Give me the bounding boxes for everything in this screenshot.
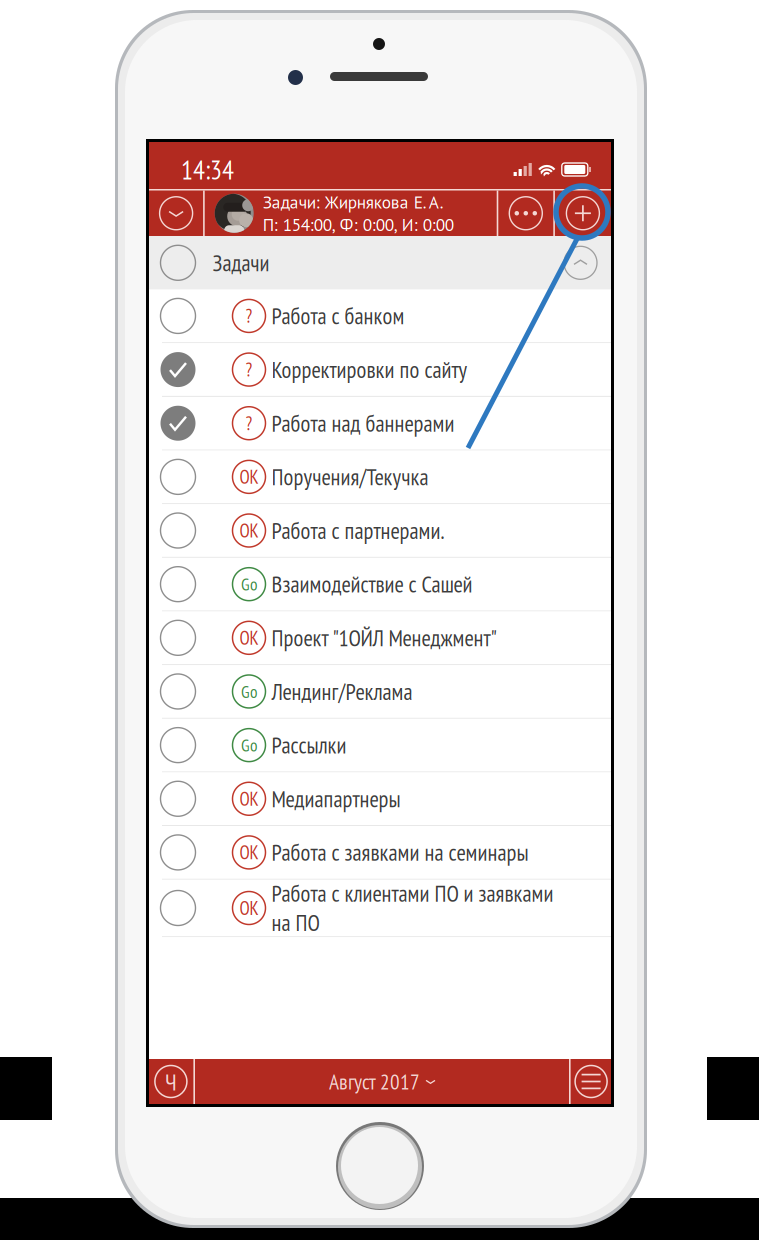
staticText: П: 154:00, Ф: 0:00, И: 0:00 — [263, 213, 454, 236]
button[interactable]: Август 2017 — [195, 1059, 569, 1104]
button[interactable]: Go — [149, 719, 611, 772]
button[interactable]: OK — [149, 772, 611, 826]
staticText: OK — [239, 896, 258, 920]
staticText: ? — [245, 304, 252, 328]
button[interactable]: More — [498, 190, 553, 236]
staticText: Лендинг/Реклама — [271, 677, 412, 706]
staticText: Корректировки по сайту — [271, 355, 467, 384]
staticText: Работа с банком — [271, 301, 404, 331]
button[interactable]: OK — [149, 880, 611, 937]
staticText: Работа с партнерами. — [271, 516, 444, 545]
button[interactable]: OK — [149, 826, 611, 880]
button[interactable]: ? — [149, 343, 611, 397]
staticText: Работа с заявками на семинары — [271, 838, 528, 867]
button[interactable]: OK — [149, 611, 611, 665]
staticText: ? — [245, 411, 252, 435]
staticText: Рассылки — [271, 730, 346, 760]
staticText: Работа с клиентами ПО и заявками на ПО — [271, 879, 553, 937]
staticText: OK — [239, 518, 258, 543]
button[interactable]: OK — [149, 450, 611, 504]
staticText: OK — [239, 465, 258, 489]
staticText: Go — [241, 680, 257, 703]
staticText: OK — [239, 840, 258, 864]
staticText: Go — [241, 573, 257, 595]
staticText: Задачи: Жирнякова Е. А. — [263, 191, 444, 213]
staticText: Проект "1ОЙЛ Менеджмент" — [271, 623, 496, 652]
staticText: Go — [241, 734, 257, 756]
staticText: Работа над баннерами — [271, 409, 454, 438]
button[interactable]: Menu — [571, 1059, 612, 1104]
button[interactable]: ? — [149, 290, 611, 343]
staticText: Ч — [165, 1066, 177, 1097]
staticText: Задачи — [212, 248, 269, 277]
button[interactable]: OK — [149, 504, 611, 558]
button[interactable]: Go — [149, 558, 611, 611]
button[interactable]: Задачи — [149, 236, 611, 290]
button[interactable]: Задачи: Жирнякова Е. А. — [205, 190, 497, 236]
staticText: OK — [239, 787, 258, 811]
button[interactable]: Add — [555, 190, 611, 236]
button[interactable]: Collapse — [149, 190, 203, 236]
staticText: Медиапартнеры — [271, 784, 400, 813]
staticText: 14:34 — [181, 152, 234, 187]
button[interactable]: ? — [149, 397, 611, 450]
staticText: OK — [239, 626, 258, 650]
staticText: Август 2017 — [329, 1068, 420, 1095]
staticText: Взаимодействие с Сашей — [271, 569, 472, 599]
button[interactable]: Hours — [148, 1059, 193, 1104]
button[interactable]: Go — [149, 665, 611, 719]
staticText: Поручения/Текучка — [271, 462, 428, 491]
staticText: ? — [245, 357, 252, 382]
